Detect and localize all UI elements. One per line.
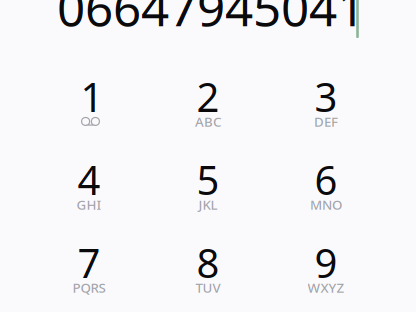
button[interactable]: 3 DEF <box>267 66 385 149</box>
staticText: 4 <box>77 153 100 206</box>
staticText: 3 <box>314 70 337 123</box>
button[interactable]: 9 WXYZ <box>267 232 385 312</box>
staticText: 8 <box>196 236 219 289</box>
staticText: JKL <box>198 196 217 213</box>
staticText: 5 <box>196 153 219 206</box>
button[interactable]: 2 ABC <box>149 66 267 149</box>
staticText: DEF <box>314 113 338 130</box>
staticText: GHI <box>76 196 101 213</box>
staticText: 06647945041 <box>57 0 365 40</box>
staticText: MNO <box>310 196 342 213</box>
staticText: 7 <box>77 236 100 289</box>
staticText: 6 <box>314 153 337 206</box>
staticText: TUV <box>195 279 220 296</box>
button[interactable]: 4 GHI <box>30 149 148 232</box>
staticText: 1 <box>80 70 103 123</box>
button[interactable]: 6 MNO <box>267 149 385 232</box>
staticText: WXYZ <box>307 279 344 296</box>
staticText: PQRS <box>72 279 105 296</box>
button[interactable]: 5 JKL <box>149 149 267 232</box>
button[interactable]: 8 TUV <box>149 232 267 312</box>
staticText: ABC <box>195 113 221 130</box>
button[interactable]: 1, voicemail <box>30 66 148 149</box>
staticText: 2 <box>196 70 219 123</box>
button[interactable]: 7 PQRS <box>30 232 148 312</box>
staticText: 9 <box>314 236 337 289</box>
